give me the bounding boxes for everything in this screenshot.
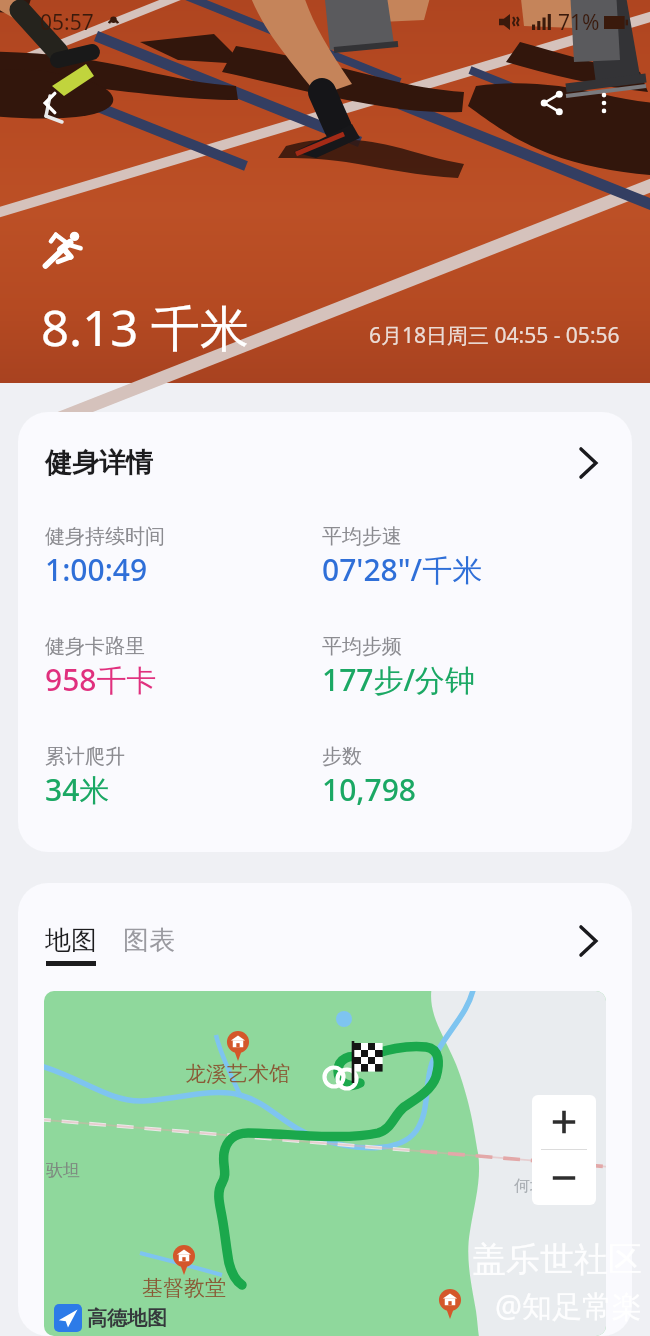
button[interactable]: Route map <box>44 991 606 1336</box>
button[interactable]: Back <box>26 79 74 127</box>
button[interactable]: Zoom out <box>532 1150 596 1205</box>
staticText: 958千卡 <box>45 659 157 700</box>
button[interactable]: 图表 <box>123 924 175 966</box>
staticText: 健身详情 <box>45 446 153 480</box>
staticText: 6月18日周三 04:55 - 05:56 <box>369 321 620 350</box>
button[interactable]: More options <box>580 79 628 127</box>
button[interactable]: Zoom in <box>532 1095 596 1149</box>
staticText: @知足常楽 <box>495 1285 642 1326</box>
staticText: 龙溪艺术馆 <box>185 1061 290 1087</box>
staticText: 基督教堂 <box>142 1275 226 1301</box>
staticText: 驮坦 <box>46 1160 80 1181</box>
staticText: 10,798 <box>322 769 416 810</box>
staticText: 高德地图 <box>87 1306 167 1331</box>
staticText: 健身持续时间 <box>45 524 165 549</box>
staticText: 05:57 <box>40 8 94 37</box>
staticText: 图表 <box>123 924 175 957</box>
button[interactable]: 地图 <box>45 924 97 966</box>
button[interactable]: Open map details <box>566 923 610 958</box>
staticText: 何坑 <box>514 1176 546 1196</box>
staticText: 177步/分钟 <box>322 659 476 700</box>
staticText: 健身卡路里 <box>45 634 145 659</box>
button[interactable]: Share <box>528 79 576 127</box>
staticText: 平均步速 <box>322 524 402 549</box>
staticText: 盖乐世社区 <box>472 1238 642 1281</box>
staticText: 1:00:49 <box>45 549 148 590</box>
staticText: 07'28"/千米 <box>322 549 483 590</box>
staticText: 平均步频 <box>322 634 402 659</box>
staticText: 8.13 千米 <box>41 294 249 361</box>
staticText: 步数 <box>322 744 362 769</box>
staticText: 地图 <box>45 924 97 957</box>
staticText: 71% <box>558 8 600 37</box>
button[interactable]: 健身详情 <box>18 412 632 852</box>
staticText: 34米 <box>45 769 110 810</box>
staticText: 累计爬升 <box>45 744 125 769</box>
